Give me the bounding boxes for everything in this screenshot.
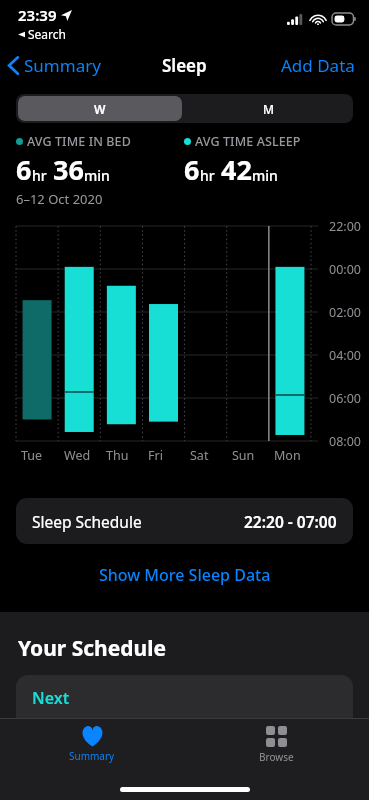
staticText: Summary [69, 749, 115, 763]
button[interactable]: Browse tab [184, 719, 369, 769]
staticText: Thu [106, 447, 129, 464]
button[interactable]: Sleep Schedule [16, 498, 353, 544]
button[interactable]: M [184, 94, 353, 123]
staticText: 04:00 [329, 347, 361, 364]
staticText: hr [32, 166, 47, 185]
button[interactable]: Next [16, 675, 353, 795]
staticText: Browse [259, 750, 294, 764]
staticText: hr [200, 166, 215, 185]
staticText: 23:39 [18, 5, 57, 25]
staticText: 6–12 Oct 2020 [16, 190, 103, 208]
staticText: AVG TIME IN BED [27, 133, 131, 150]
button[interactable]: W [18, 96, 182, 121]
staticText: 42 [221, 151, 252, 188]
button[interactable]: Summary tab [0, 719, 184, 769]
staticText: 08:00 [329, 433, 361, 450]
staticText: Sleep Schedule [32, 511, 142, 532]
staticText: Show More Sleep Data [99, 564, 271, 586]
staticText: Summary [24, 54, 101, 77]
staticText: Sleep [162, 54, 207, 77]
button[interactable]: Summary [0, 48, 111, 83]
staticText: Add Data [281, 54, 355, 77]
button[interactable]: Show More Sleep Data [0, 558, 369, 592]
staticText: Sat [190, 447, 209, 464]
staticText: 22:20 - 07:00 [244, 511, 337, 532]
staticText: AVG TIME ASLEEP [195, 133, 301, 150]
staticText: Search [28, 26, 66, 42]
staticText: 06:00 [329, 390, 361, 407]
staticText: Fri [148, 447, 163, 464]
staticText: W [94, 101, 106, 117]
staticText: 36 [53, 151, 84, 188]
staticText: min [252, 166, 278, 185]
staticText: 6 [16, 151, 32, 188]
staticText: M [263, 101, 275, 117]
staticText: Mon [274, 447, 301, 464]
staticText: Next [32, 687, 70, 709]
staticText: 02:00 [329, 304, 361, 321]
staticText: Your Schedule [18, 634, 167, 663]
staticText: Tue [21, 447, 43, 464]
button[interactable]: Add Data [267, 47, 369, 84]
staticText: 00:00 [329, 261, 361, 278]
staticText: 6 [184, 151, 200, 188]
staticText: min [84, 166, 110, 185]
staticText: Wed [64, 447, 91, 464]
staticText: Sun [232, 447, 255, 464]
staticText: 22:00 [329, 218, 361, 235]
